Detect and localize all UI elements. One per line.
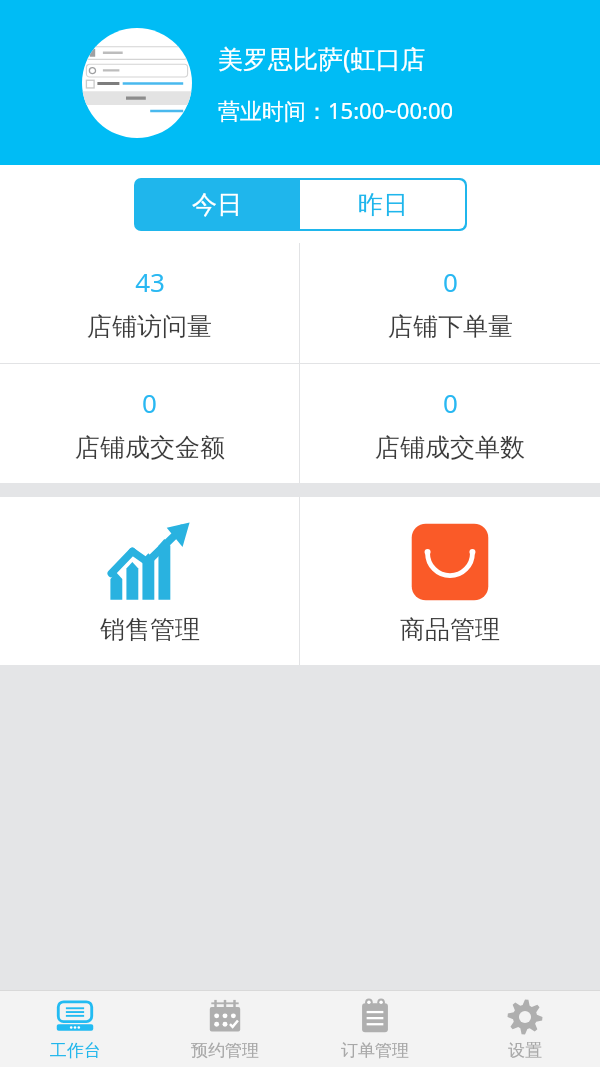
button[interactable]: 预约管理 [150,991,300,1067]
staticText: 店铺成交金额 [75,432,225,463]
button[interactable]: 销售管理 [0,497,299,665]
staticText: 0 [142,385,157,420]
button[interactable]: 今日 [134,178,300,231]
staticText: 商品管理 [400,614,500,645]
button[interactable]: 订单管理 [300,991,450,1067]
staticText: 43 [135,264,165,299]
button[interactable]: 昨日 [300,180,465,229]
staticText: 店铺成交单数 [375,432,525,463]
button[interactable]: 0 [300,364,600,483]
staticText: 店铺下单量 [388,311,513,342]
staticText: 营业时间：15:00~00:00 [218,95,454,125]
button[interactable]: 商品管理 [300,497,600,665]
button[interactable]: 工作台 [0,991,150,1067]
button[interactable]: 0 [300,243,600,363]
button[interactable]: 0 [0,364,299,483]
staticText: 今日 [192,189,242,220]
staticText: 0 [443,385,458,420]
staticText: 设置 [508,1040,542,1061]
staticText: 美罗思比萨(虹口店 [218,41,426,75]
staticText: 店铺访问量 [87,311,212,342]
staticText: 昨日 [358,189,408,220]
staticText: 0 [443,264,458,299]
staticText: 工作台 [50,1040,101,1061]
staticText: 订单管理 [341,1040,409,1061]
button[interactable]: 设置 [450,991,600,1067]
staticText: 预约管理 [191,1040,259,1061]
button[interactable]: Shop avatar [82,28,192,138]
staticText: 销售管理 [100,614,200,645]
button[interactable]: 43 [0,243,299,363]
